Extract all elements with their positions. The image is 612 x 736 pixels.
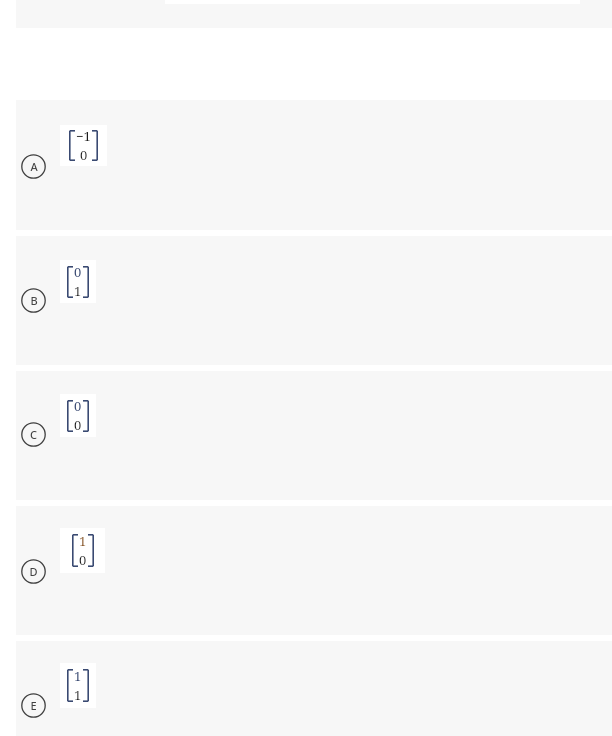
staticText: 1 — [74, 282, 82, 300]
staticText: B — [30, 293, 38, 308]
button[interactable]: B — [16, 236, 612, 365]
button[interactable]: D — [16, 506, 612, 635]
staticText: 0 — [74, 416, 82, 434]
staticText: 0 — [74, 397, 82, 415]
staticText: C — [30, 427, 37, 442]
button[interactable]: A — [16, 100, 612, 230]
other: Multiple choice question — [0, 0, 612, 736]
staticText: A — [30, 159, 38, 174]
staticText: 0 — [79, 551, 87, 569]
staticText: 1 — [74, 667, 82, 685]
staticText: 1 — [79, 532, 87, 550]
staticText: 1 — [74, 686, 82, 704]
staticText: 0 — [80, 146, 88, 164]
button[interactable]: E — [16, 641, 612, 736]
staticText: −1 — [76, 127, 91, 145]
staticText: D — [29, 564, 38, 579]
staticText: 0 — [74, 263, 82, 281]
button[interactable]: C — [16, 371, 612, 500]
staticText: E — [30, 698, 37, 713]
